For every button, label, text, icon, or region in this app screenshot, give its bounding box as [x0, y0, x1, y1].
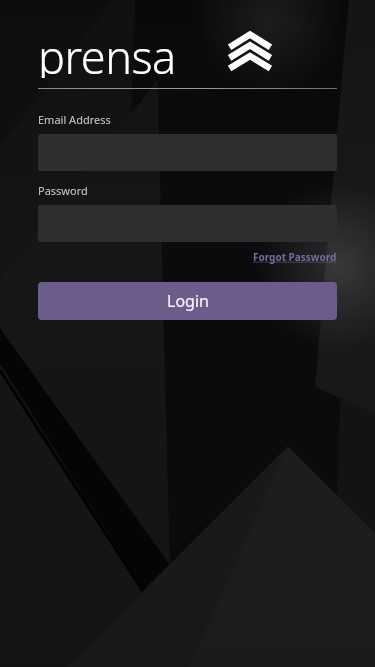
staticText: Email Address	[38, 112, 111, 127]
button[interactable]: Login	[38, 282, 337, 320]
staticText: Password	[38, 183, 88, 198]
staticText: prensa	[38, 26, 176, 78]
button[interactable]: Forgot Password	[253, 248, 337, 266]
staticText: Login	[167, 290, 209, 312]
